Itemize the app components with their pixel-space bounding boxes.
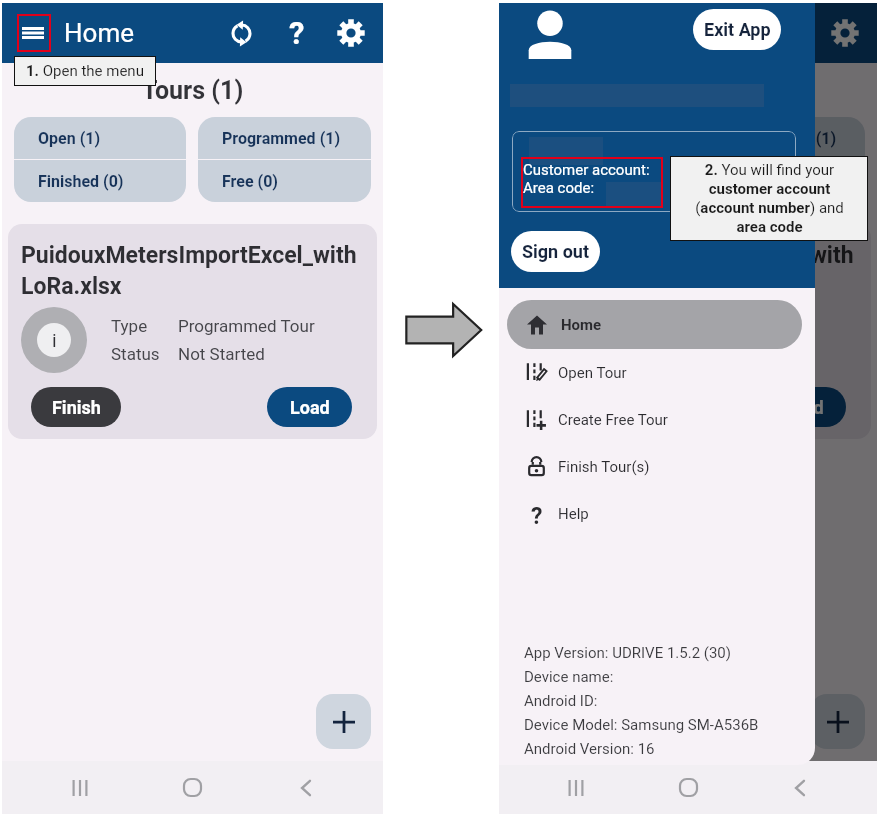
staticText: Create Free Tour [558,411,668,429]
staticText: Finished (0) [38,172,124,191]
staticText: Exit App [704,19,771,40]
staticText: Programmed (1) [222,129,341,148]
staticText: Open (1) [535,129,598,148]
button[interactable]: Open (1) [511,117,682,159]
staticText: 2. You will find your customer account (… [695,161,844,236]
staticText: Status [111,344,160,364]
staticText: Finished (0) [535,172,621,191]
staticText: Free (0) [222,172,278,191]
button[interactable]: PuidouxMetersImportExcel_with LoRa.xlsx [505,224,871,439]
button[interactable]: Open the menu [512,14,548,52]
button[interactable]: Exit App [693,9,781,50]
button[interactable]: Sign out [511,231,600,272]
staticText: Free (0) [718,172,774,191]
staticText: Programmed Tour [675,316,812,336]
staticText: ? [531,503,543,524]
staticText: Open Tour [558,364,627,382]
staticText: Programmed (1) [718,129,837,148]
staticText: Load [290,397,330,418]
staticText: Finish [52,397,101,418]
button[interactable]: Synchronize [220,12,262,54]
button[interactable]: Finished (0) [511,160,682,202]
button[interactable]: Create Free Tour [499,396,815,443]
staticText: Not Started [675,344,762,364]
button[interactable]: Finished (0) [14,160,186,202]
staticText: i [52,329,57,351]
button[interactable]: Add tour [810,694,865,749]
button[interactable]: Programmed (1) [198,117,371,159]
staticText: Type [111,316,148,336]
button[interactable]: Help [770,12,812,54]
staticText: Programmed Tour [178,316,315,336]
staticText: Area code: [523,179,595,197]
button[interactable]: Free (0) [198,160,371,202]
button[interactable]: Finish [31,387,121,427]
staticText: Tours (1) [637,76,739,105]
button[interactable]: Programmed (1) [694,117,865,159]
button[interactable]: Home [507,300,802,349]
staticText: Finish Tour(s) [558,458,650,476]
button[interactable]: PuidouxMetersImportExcel_with LoRa.xlsx [8,224,377,439]
button[interactable]: Settings [330,12,372,54]
staticText: Status [608,344,657,364]
staticText: Help [558,505,589,523]
staticText: Open (1) [38,129,101,148]
staticText: Load [784,397,824,418]
staticText: Tours (1) [142,76,244,105]
button[interactable]: Free (0) [694,160,865,202]
staticText: Customer account: [523,161,650,179]
staticText: Sign out [522,241,590,262]
button[interactable]: ? [499,490,815,537]
staticText: i [549,329,554,351]
button[interactable]: Help [276,12,318,54]
staticText: PuidouxMetersImportExcel_with LoRa.xlsx [21,242,357,299]
staticText: Not Started [178,344,265,364]
button[interactable]: Load [761,387,846,427]
button[interactable]: Open Tour [499,349,815,396]
button[interactable]: Synchronize [714,12,756,54]
staticText: Home [561,18,631,48]
staticText: Finish [549,397,598,418]
button[interactable]: Open the menu [15,14,51,52]
staticText: Home [64,18,134,48]
button[interactable]: Add tour [316,694,371,749]
staticText: App Version: UDRIVE 1.5.2 (30) Device na… [524,644,759,758]
button[interactable]: Finish Tour(s) [499,443,815,490]
button[interactable]: Open (1) [14,117,186,159]
staticText: PuidouxMetersImportExcel_with LoRa.xlsx [518,242,854,299]
staticText: ? [289,15,305,51]
button[interactable]: Finish [528,387,618,427]
button[interactable]: Load [267,387,352,427]
button[interactable]: Settings [824,12,866,54]
staticText: 1. Open the menu [26,62,144,80]
staticText: Home [561,316,602,334]
